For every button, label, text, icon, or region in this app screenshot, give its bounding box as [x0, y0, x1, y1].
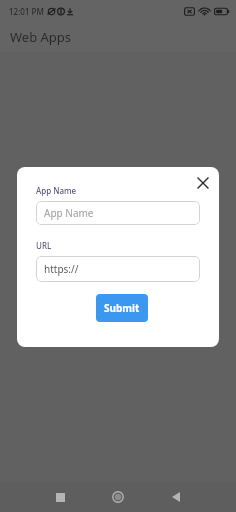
- button[interactable]: Submit: [96, 294, 148, 322]
- button[interactable]: https://: [36, 256, 200, 282]
- staticText: URL: [36, 240, 52, 251]
- button[interactable]: Close: [193, 173, 213, 193]
- button[interactable]: App Name: [36, 201, 200, 225]
- button[interactable]: Recent apps: [43, 482, 77, 512]
- button[interactable]: Home: [101, 482, 135, 512]
- staticText: https://: [44, 262, 79, 276]
- staticText: 12:01 PM: [9, 6, 44, 17]
- button[interactable]: Back: [159, 482, 193, 512]
- staticText: App Name: [36, 185, 77, 196]
- staticText: Submit: [104, 301, 140, 315]
- staticText: App Name: [44, 206, 94, 220]
- staticText: Web Apps: [10, 28, 72, 46]
